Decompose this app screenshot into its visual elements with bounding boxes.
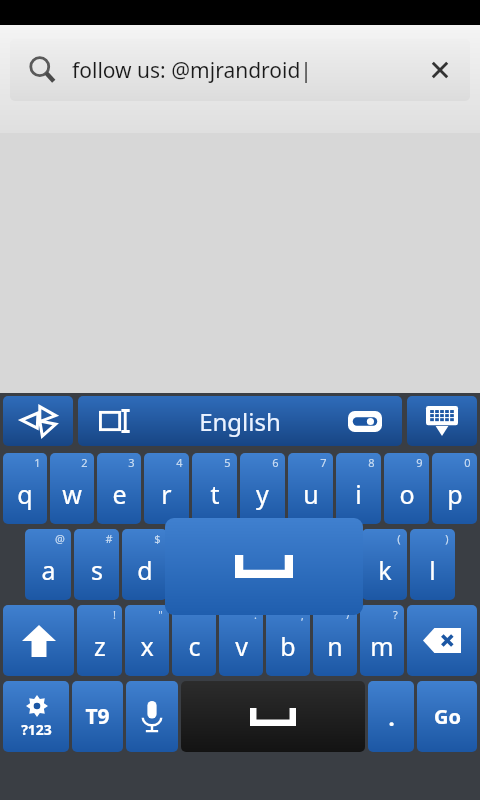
staticText: T9 xyxy=(85,702,110,731)
staticText: ( xyxy=(397,531,401,546)
staticText: ?123 xyxy=(21,720,52,739)
staticText: x xyxy=(140,629,154,663)
button[interactable]: q xyxy=(3,453,47,524)
staticText: @ xyxy=(55,531,65,546)
staticText: a xyxy=(41,553,56,587)
button[interactable]: Space xyxy=(181,681,365,752)
button[interactable]: v xyxy=(219,605,263,676)
staticText: g xyxy=(233,553,249,587)
button[interactable]: T9 xyxy=(72,681,123,752)
button[interactable]: g xyxy=(218,529,263,600)
staticText: 1 xyxy=(34,455,41,470)
button[interactable]: s xyxy=(74,529,119,600)
button[interactable]: f xyxy=(170,529,215,600)
staticText: b xyxy=(280,629,296,663)
staticText: follow us: @mjrandroid| xyxy=(72,56,312,85)
staticText: o xyxy=(399,477,415,511)
button[interactable]: z xyxy=(77,605,122,676)
staticText: y xyxy=(256,477,269,511)
staticText: $ xyxy=(154,531,161,546)
staticText: d xyxy=(137,553,153,587)
staticText: " xyxy=(158,607,163,622)
staticText: h xyxy=(281,553,297,587)
button[interactable]: Voice input xyxy=(126,681,178,752)
staticText: ? xyxy=(393,607,398,622)
button[interactable]: e xyxy=(97,453,141,524)
staticText: i xyxy=(355,477,362,511)
staticText: z xyxy=(94,629,106,663)
button[interactable]: p xyxy=(432,453,477,524)
button[interactable]: m xyxy=(360,605,404,676)
button[interactable]: y xyxy=(240,453,285,524)
button[interactable]: Keyboard layout xyxy=(328,396,402,446)
button[interactable]: follow us: @mjrandroid| xyxy=(10,39,470,101)
button[interactable]: Go xyxy=(417,681,477,752)
button[interactable]: Shift xyxy=(3,605,74,676)
button[interactable]: a xyxy=(25,529,71,600)
staticText: r xyxy=(161,477,172,511)
button[interactable]: c xyxy=(172,605,216,676)
button[interactable]: Keyboard logo xyxy=(3,396,73,446)
staticText: ; xyxy=(301,607,304,622)
staticText: m xyxy=(370,629,394,663)
button[interactable]: d xyxy=(122,529,167,600)
staticText: ! xyxy=(113,607,116,622)
button[interactable]: h xyxy=(266,529,311,600)
staticText: # xyxy=(105,531,113,546)
button[interactable]: r xyxy=(144,453,189,524)
staticText: s xyxy=(91,553,103,587)
staticText: v xyxy=(235,629,248,663)
button[interactable]: Change input method xyxy=(78,396,152,446)
staticText: e xyxy=(112,477,127,511)
staticText: 4 xyxy=(176,455,183,470)
staticText: 5 xyxy=(224,455,231,470)
button[interactable]: o xyxy=(384,453,429,524)
staticText: f xyxy=(188,553,197,587)
staticText: 0 xyxy=(464,455,471,470)
button[interactable]: Hide keyboard xyxy=(407,396,477,446)
staticText: 2 xyxy=(81,455,88,470)
staticText: c xyxy=(188,629,201,663)
staticText: 8 xyxy=(368,455,375,470)
staticText: 7 xyxy=(320,455,327,470)
staticText: 9 xyxy=(416,455,423,470)
button[interactable]: Backspace xyxy=(407,605,477,676)
staticText: l xyxy=(429,553,436,587)
button[interactable]: b xyxy=(266,605,310,676)
button[interactable]: . xyxy=(368,681,414,752)
button[interactable]: Symbols and settings xyxy=(3,681,69,752)
button[interactable]: u xyxy=(288,453,333,524)
button[interactable]: w xyxy=(50,453,94,524)
button[interactable]: k xyxy=(362,529,407,600)
button[interactable]: l xyxy=(410,529,455,600)
staticText: 3 xyxy=(128,455,135,470)
staticText: p xyxy=(447,477,463,511)
staticText: w xyxy=(62,477,82,511)
button[interactable]: i xyxy=(336,453,381,524)
staticText: : xyxy=(254,607,257,622)
button[interactable]: t xyxy=(192,453,237,524)
staticText: k xyxy=(378,553,392,587)
staticText: / xyxy=(346,607,351,622)
staticText: j xyxy=(333,553,340,587)
button[interactable]: Clear search xyxy=(420,50,460,90)
staticText: t xyxy=(210,477,220,511)
staticText: ' xyxy=(207,607,210,622)
button[interactable]: j xyxy=(314,529,359,600)
button[interactable]: n xyxy=(313,605,357,676)
staticText: 6 xyxy=(272,455,279,470)
staticText: q xyxy=(17,477,33,511)
staticText: u xyxy=(303,477,319,511)
staticText: n xyxy=(327,629,343,663)
button[interactable]: x xyxy=(125,605,169,676)
staticText: English xyxy=(199,405,281,438)
staticText: Go xyxy=(434,703,461,730)
button[interactable]: English xyxy=(152,396,328,446)
staticText: ) xyxy=(445,531,449,546)
staticText: . xyxy=(388,702,395,732)
